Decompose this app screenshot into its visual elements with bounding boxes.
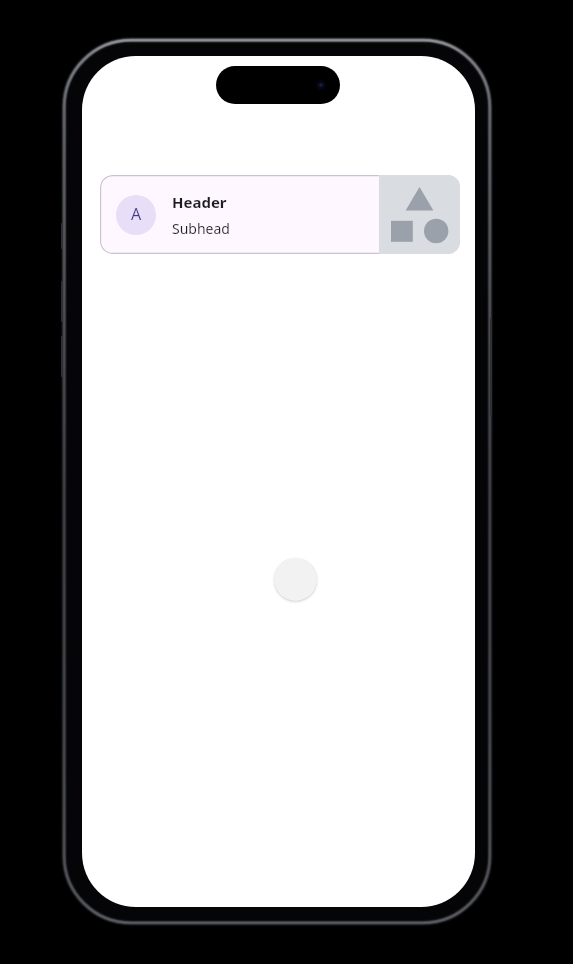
staticText: Subhead	[172, 219, 230, 238]
staticText: Header	[172, 192, 227, 212]
button[interactable]: Add	[274, 558, 317, 601]
staticText: A	[131, 203, 142, 225]
button[interactable]: A	[100, 175, 460, 254]
